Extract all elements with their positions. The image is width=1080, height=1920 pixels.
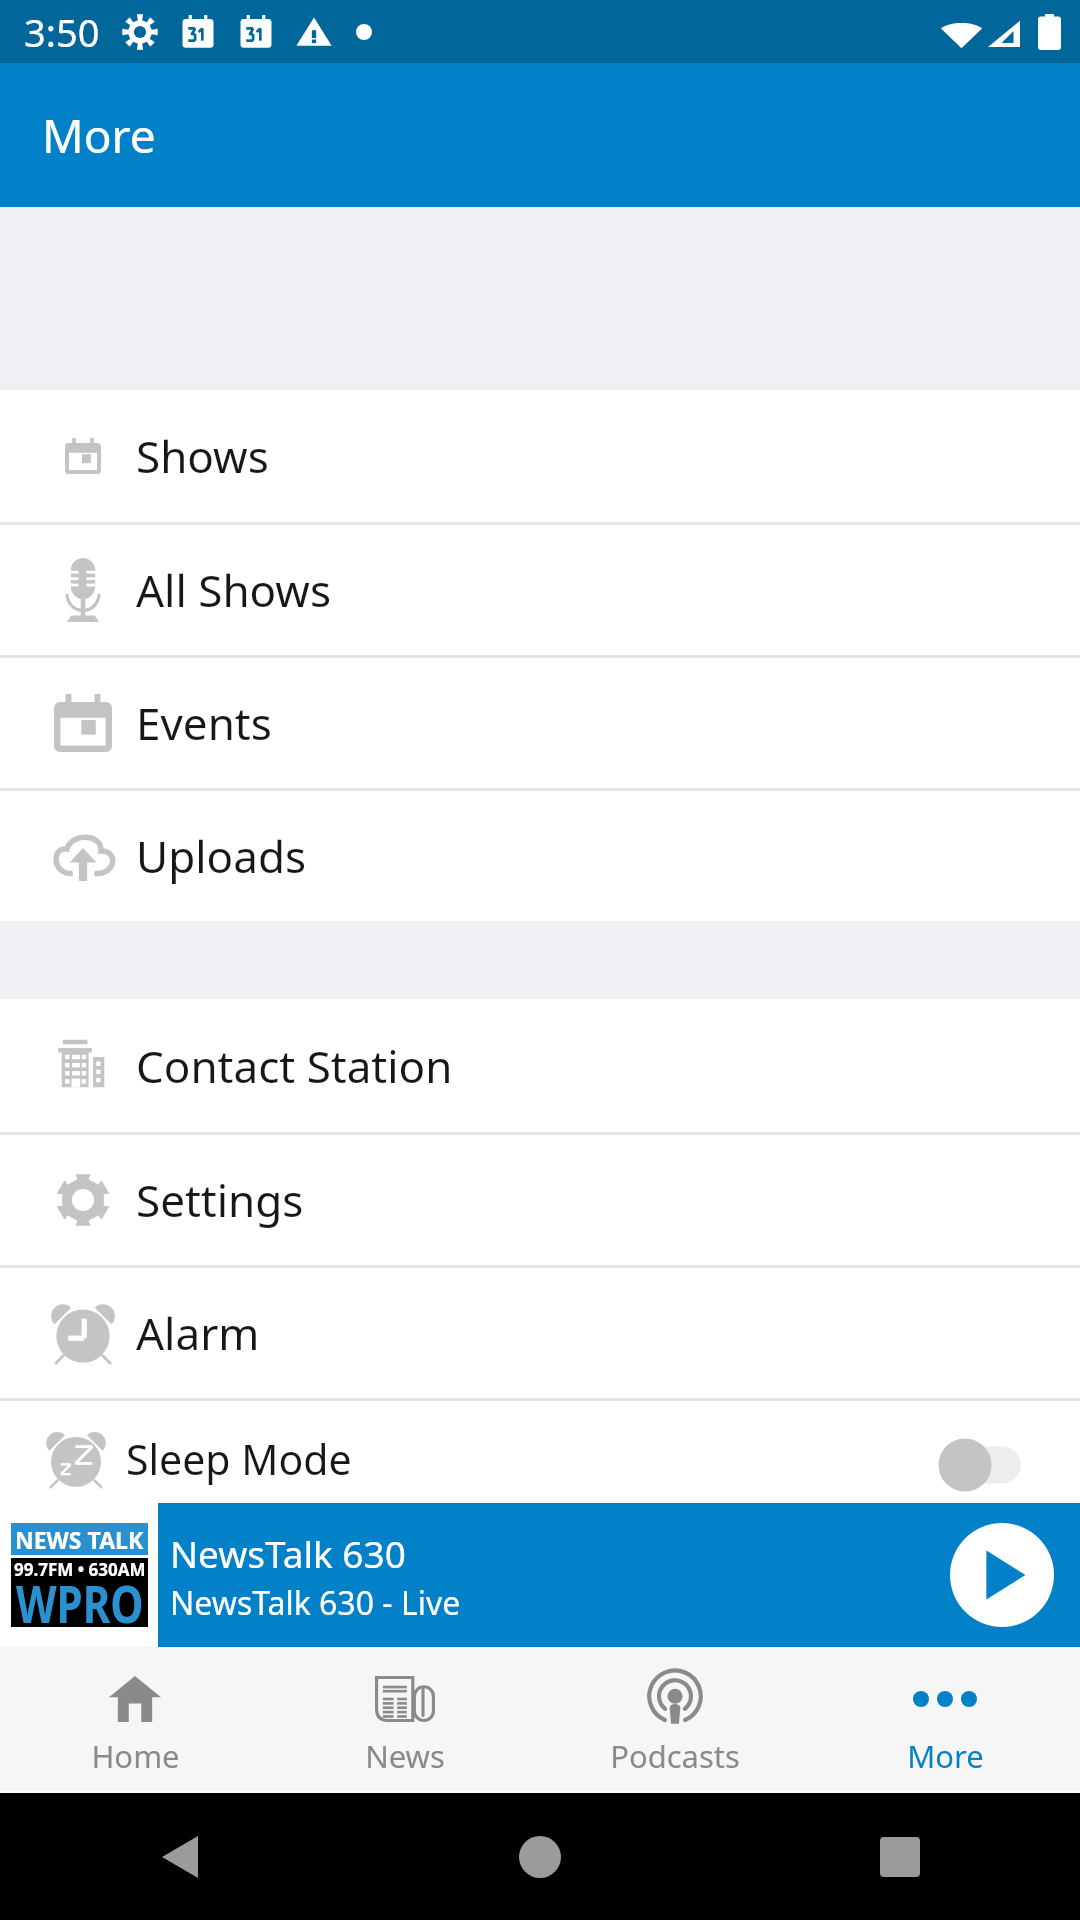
button[interactable]: Settings — [0, 1135, 1080, 1265]
staticText: Podcasts — [610, 1735, 740, 1777]
button[interactable]: More — [0, 63, 1080, 207]
button[interactable]: Events — [0, 658, 1080, 788]
button[interactable]: Contact Station — [0, 999, 1080, 1132]
button[interactable]: Sleep Mode — [0, 1401, 1080, 1503]
button[interactable]: NewsTalk 630 WPRO station logo — [11, 1523, 148, 1627]
staticText: Events — [136, 693, 272, 753]
staticText: Uploads — [136, 826, 307, 886]
staticText: NewsTalk 630 — [170, 1528, 406, 1578]
button[interactable]: News — [270, 1647, 540, 1791]
button[interactable]: Home — [0, 1647, 270, 1791]
staticText: More — [42, 104, 156, 167]
staticText: More — [907, 1735, 984, 1777]
staticText: Settings — [136, 1170, 304, 1230]
button[interactable]: Play — [950, 1523, 1054, 1627]
staticText: WPRO — [16, 1568, 144, 1624]
button[interactable]: Recent apps — [870, 1827, 930, 1887]
staticText: Alarm — [136, 1303, 260, 1363]
button[interactable]: Shows — [0, 390, 1080, 522]
button[interactable]: Sleep Mode toggle — [921, 1420, 1041, 1510]
staticText: 99.7FM • 630AM — [14, 1558, 146, 1581]
staticText: Contact Station — [136, 1036, 453, 1096]
button[interactable]: Back — [150, 1827, 210, 1887]
button[interactable]: Home — [510, 1827, 570, 1887]
staticText: News — [365, 1735, 445, 1777]
button[interactable]: More — [810, 1647, 1080, 1791]
staticText: 3:50 — [24, 6, 100, 58]
staticText: Shows — [136, 426, 269, 486]
button[interactable]: Podcasts — [540, 1647, 810, 1791]
button[interactable]: Uploads — [0, 791, 1080, 921]
staticText: All Shows — [136, 560, 332, 620]
button[interactable]: Alarm — [0, 1268, 1080, 1398]
staticText: NEWS TALK — [15, 1524, 144, 1555]
staticText: Sleep Mode — [126, 1431, 352, 1487]
staticText: Home — [91, 1735, 180, 1777]
button[interactable]: NewsTalk 630 — [158, 1503, 1080, 1647]
button[interactable]: All Shows — [0, 525, 1080, 655]
staticText: NewsTalk 630 - Live — [170, 1581, 461, 1625]
